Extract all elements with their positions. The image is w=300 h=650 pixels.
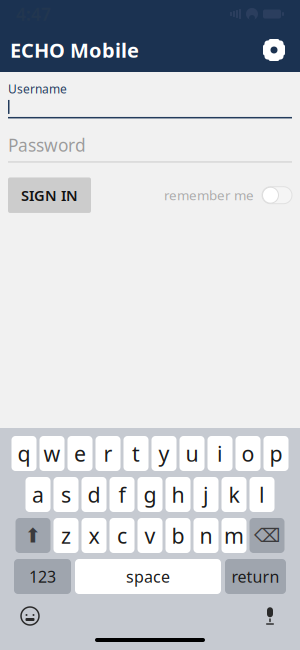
- staticText: d: [87, 480, 100, 509]
- button[interactable]: SIGN IN: [8, 177, 91, 213]
- staticText: r: [103, 439, 112, 468]
- staticText: ⌫: [254, 525, 280, 546]
- staticText: Password: [8, 133, 86, 156]
- staticText: i: [217, 439, 223, 468]
- button[interactable]: n: [193, 518, 218, 553]
- button[interactable]: u: [179, 436, 204, 471]
- staticText: SIGN IN: [21, 185, 78, 205]
- button[interactable]: Delete: [249, 518, 284, 553]
- button[interactable]: o: [235, 436, 260, 471]
- button[interactable]: Shift: [15, 518, 50, 553]
- staticText: q: [17, 439, 30, 468]
- button[interactable]: return: [225, 559, 286, 594]
- button[interactable]: d: [81, 477, 106, 512]
- button[interactable]: h: [165, 477, 190, 512]
- staticText: y: [158, 439, 169, 468]
- button[interactable]: q: [11, 436, 36, 471]
- button[interactable]: remember me: [164, 186, 292, 204]
- staticText: z: [61, 521, 71, 550]
- staticText: t: [132, 439, 140, 468]
- staticText: ⬆: [24, 524, 41, 547]
- staticText: space: [126, 566, 170, 587]
- staticText: n: [199, 521, 212, 550]
- button[interactable]: f: [109, 477, 134, 512]
- button[interactable]: c: [109, 518, 134, 553]
- staticText: ECHO Mobile: [10, 37, 139, 63]
- staticText: w: [43, 439, 60, 468]
- staticText: v: [144, 521, 155, 550]
- staticText: f: [118, 480, 125, 509]
- button[interactable]: l: [249, 477, 274, 512]
- staticText: k: [228, 480, 239, 509]
- staticText: e: [74, 439, 86, 468]
- button[interactable]: p: [263, 436, 288, 471]
- button[interactable]: i: [207, 436, 232, 471]
- button[interactable]: w: [39, 436, 64, 471]
- staticText: c: [117, 521, 127, 550]
- staticText: m: [224, 521, 244, 550]
- button[interactable]: 123: [14, 559, 71, 594]
- staticText: o: [241, 439, 254, 468]
- button[interactable]: space: [75, 559, 221, 594]
- button[interactable]: Emoji: [14, 602, 46, 630]
- button[interactable]: r: [95, 436, 120, 471]
- button[interactable]: m: [221, 518, 246, 553]
- staticText: b: [171, 521, 184, 550]
- button[interactable]: j: [193, 477, 218, 512]
- staticText: j: [203, 480, 209, 509]
- staticText: a: [32, 480, 44, 509]
- staticText: g: [143, 480, 156, 509]
- staticText: l: [259, 480, 265, 509]
- button[interactable]: b: [165, 518, 190, 553]
- button[interactable]: x: [81, 518, 106, 553]
- staticText: Username: [8, 81, 67, 97]
- button[interactable]: g: [137, 477, 162, 512]
- button[interactable]: v: [137, 518, 162, 553]
- staticText: p: [269, 439, 282, 468]
- staticText: x: [88, 521, 99, 550]
- button[interactable]: Settings: [256, 32, 292, 68]
- button[interactable]: y: [151, 436, 176, 471]
- staticText: s: [61, 480, 71, 509]
- button[interactable]: s: [53, 477, 78, 512]
- button[interactable]: z: [53, 518, 78, 553]
- staticText: remember me: [164, 186, 254, 204]
- button[interactable]: Dictate: [254, 602, 286, 630]
- staticText: u: [185, 439, 198, 468]
- button[interactable]: t: [123, 436, 148, 471]
- staticText: 123: [29, 566, 56, 587]
- button[interactable]: a: [25, 477, 50, 512]
- staticText: h: [171, 480, 184, 509]
- button[interactable]: e: [67, 436, 92, 471]
- staticText: return: [231, 566, 279, 587]
- button[interactable]: k: [221, 477, 246, 512]
